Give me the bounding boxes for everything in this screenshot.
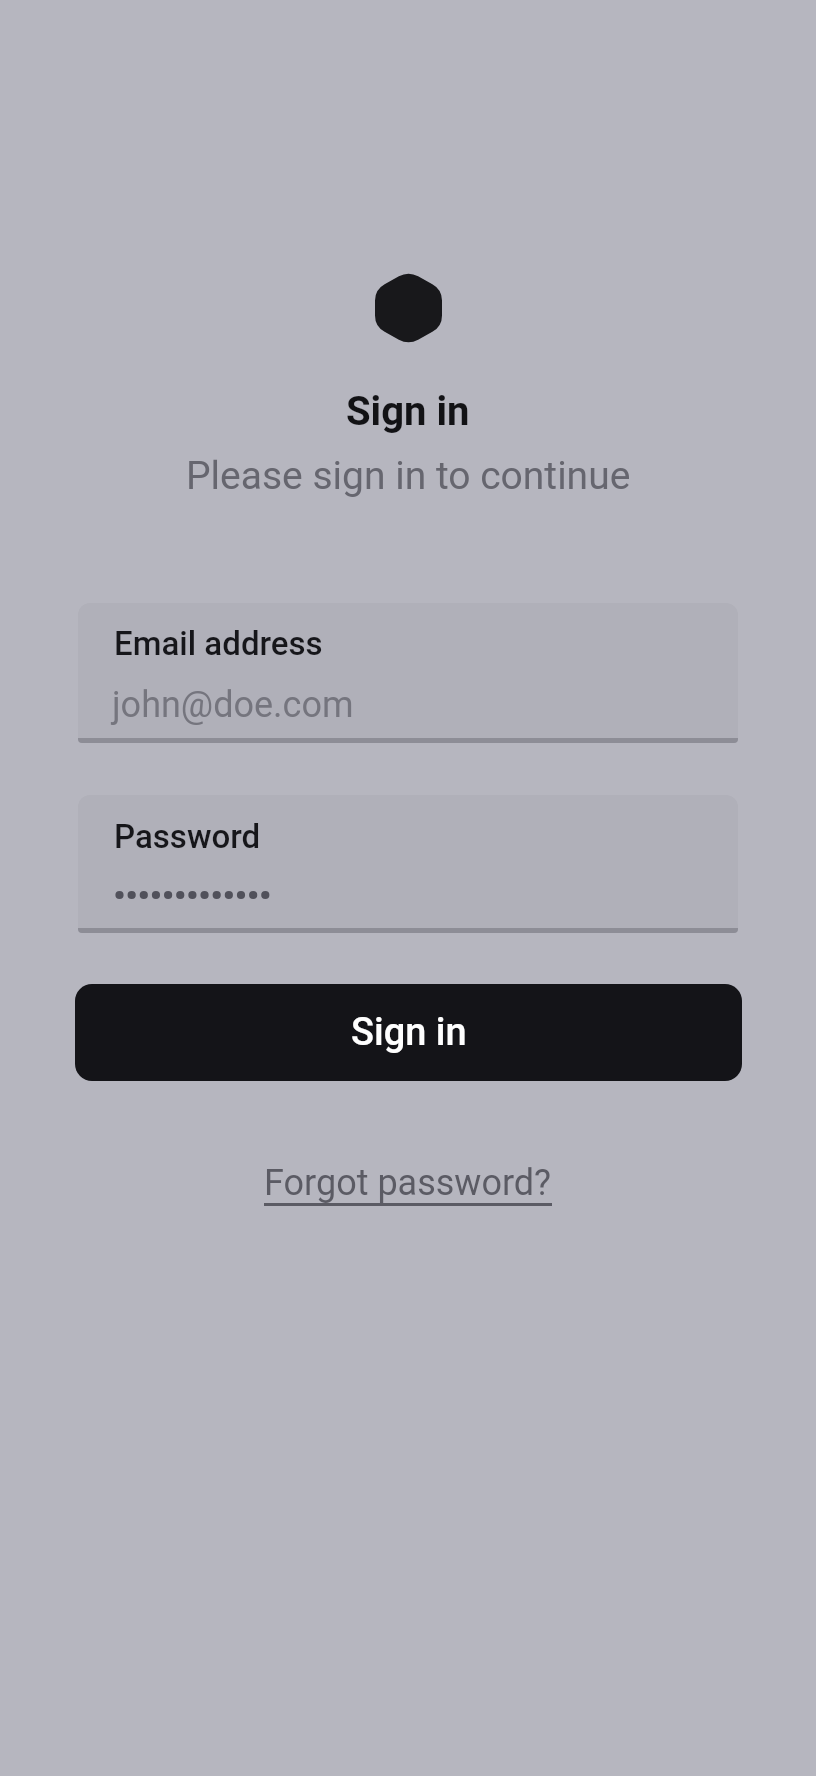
staticText: john@doe.com <box>112 684 354 726</box>
staticText: Email address <box>114 624 323 663</box>
button[interactable]: Forgot password? <box>264 1162 552 1204</box>
staticText: Please sign in to continue <box>186 453 631 499</box>
staticText: Password <box>114 817 261 856</box>
staticText: Sign in <box>351 1010 467 1055</box>
button[interactable]: Email address <box>78 603 738 743</box>
button[interactable]: Password <box>78 795 738 933</box>
button[interactable]: Sign in <box>75 984 742 1081</box>
staticText: Sign in <box>346 388 470 435</box>
